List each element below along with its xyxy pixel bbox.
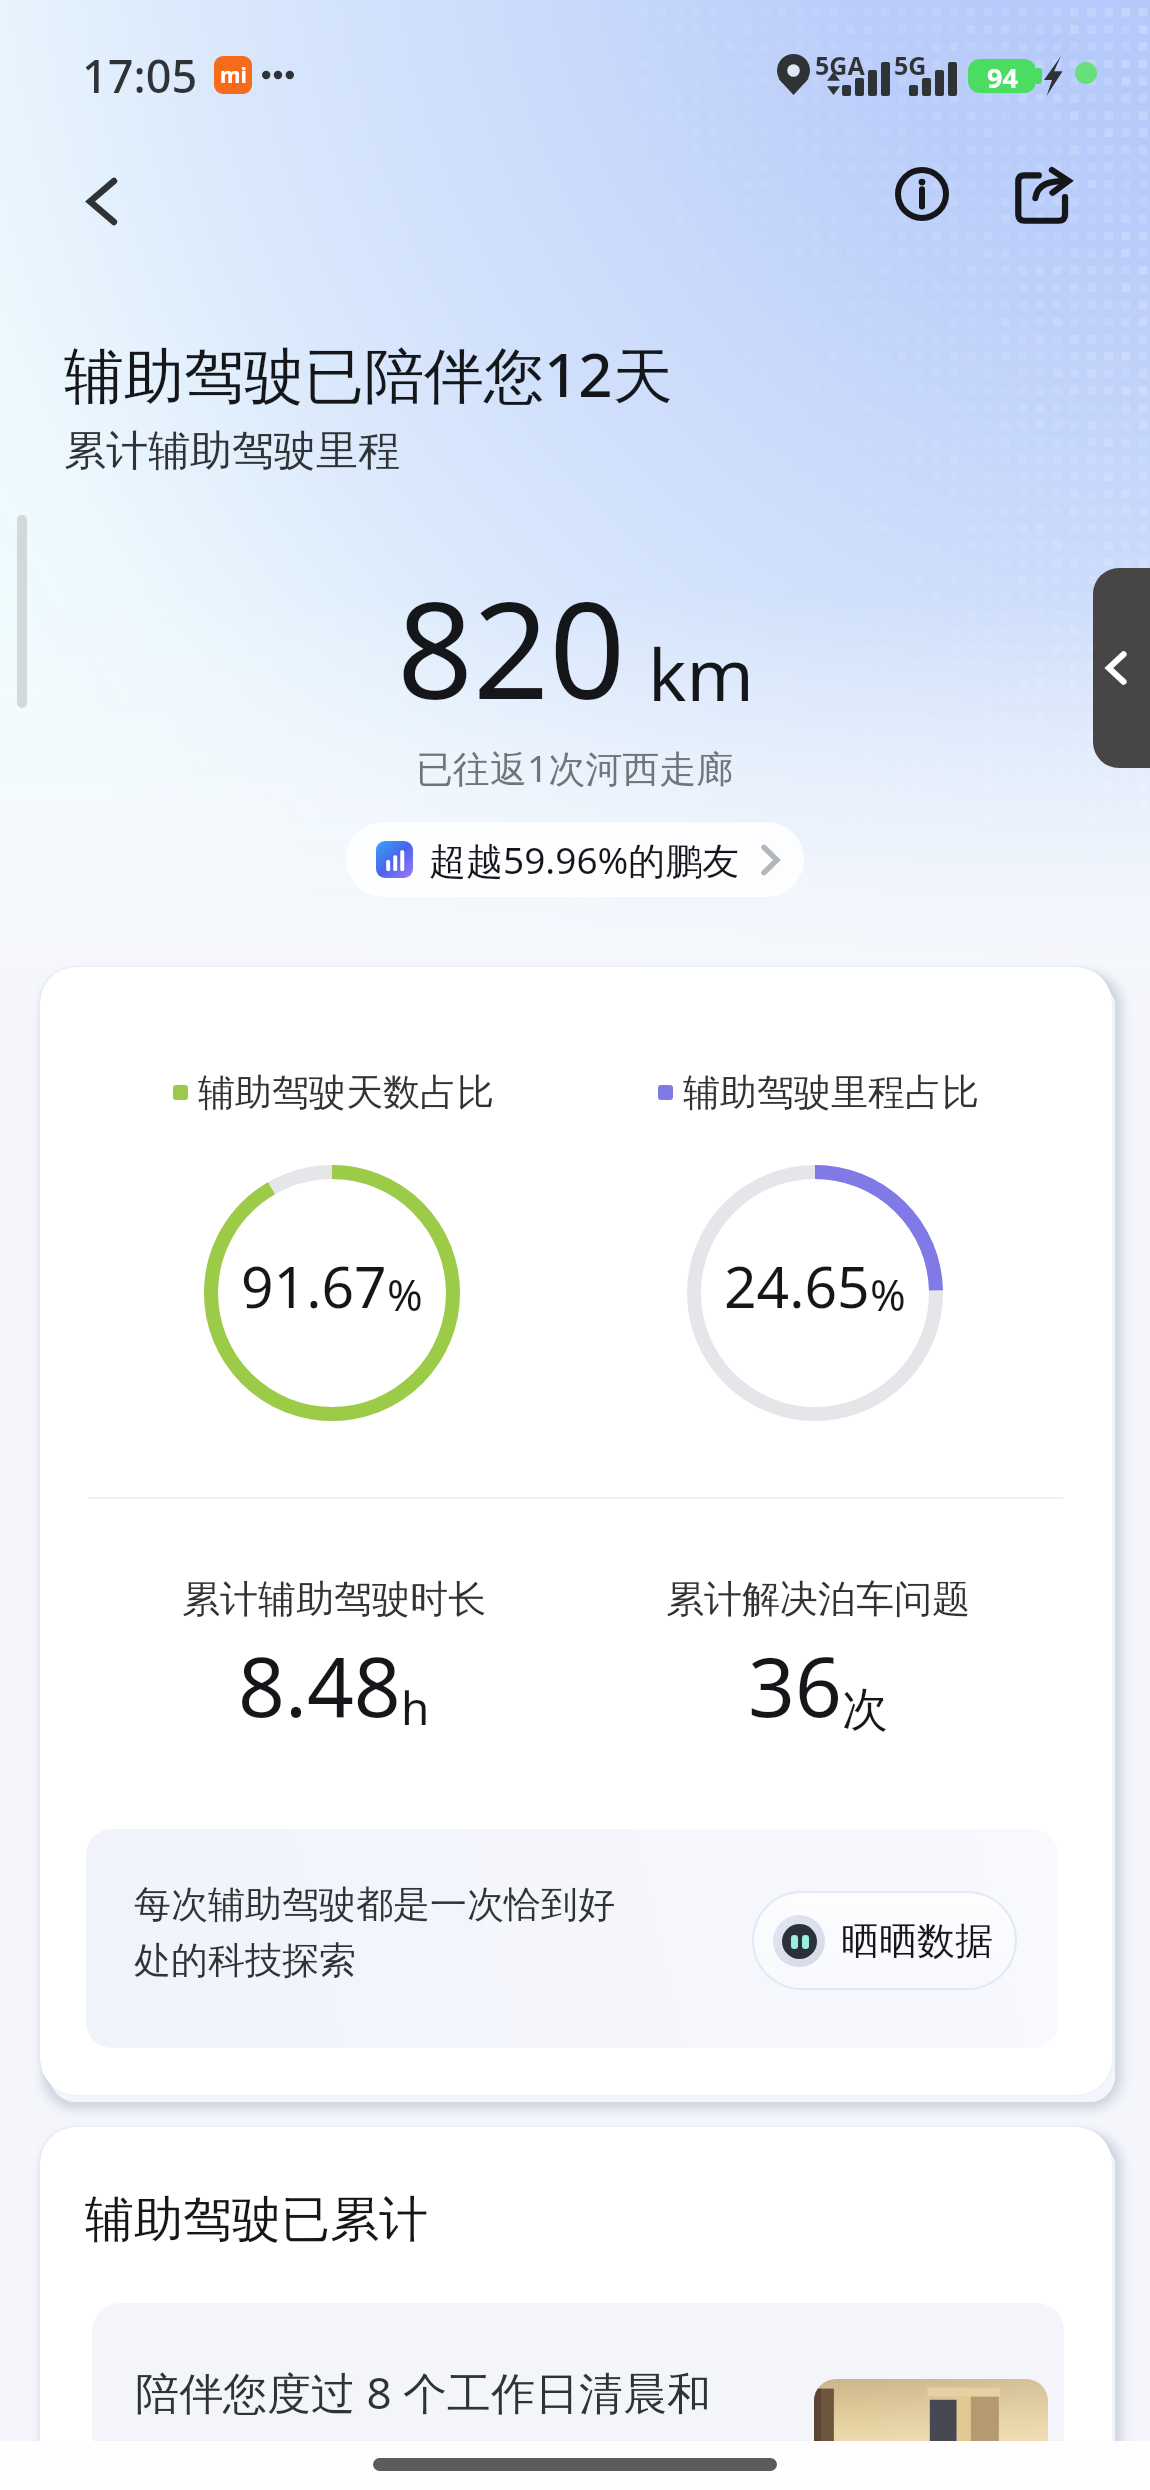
staticText: 辅助驾驶已陪伴您12天 [64, 333, 673, 415]
staticText: mi [220, 61, 247, 90]
staticText: 94 [987, 59, 1018, 93]
staticText: h [401, 1676, 430, 1739]
staticText: 8.48 [238, 1629, 401, 1741]
staticText: 累计辅助驾驶里程 [64, 425, 400, 478]
staticText: 5GA [815, 48, 865, 82]
staticText: 5G [894, 48, 927, 82]
staticText: 次 [842, 1681, 888, 1739]
staticText: 36 [748, 1629, 842, 1741]
staticText: 累计解决泊车问题 [666, 1575, 970, 1623]
button[interactable]: Back [64, 163, 140, 239]
staticText: 陪伴您度过 8 个工作日清晨和 [135, 2362, 712, 2422]
staticText: 超越59.96%的鹏友 [429, 834, 740, 885]
button[interactable]: Share [1002, 155, 1086, 239]
button[interactable]: 晒晒数据 [754, 1893, 1015, 1988]
staticText: 辅助驾驶天数占比 [198, 1069, 494, 1116]
staticText: 辅助驾驶已累计 [85, 2189, 428, 2251]
button[interactable]: Info [880, 152, 964, 236]
staticText: 晒晒数据 [841, 1917, 993, 1965]
staticText: 820 [397, 557, 626, 738]
staticText: 每次辅助驾驶都是一次恰到好 处的科技探索 [134, 1881, 615, 1984]
button[interactable]: Open side panel [1093, 568, 1150, 768]
staticText: 累计辅助驾驶时长 [182, 1575, 486, 1623]
staticText: % [870, 1265, 906, 1324]
staticText: 已往返1次河西走廊 [416, 742, 734, 793]
staticText: 辅助驾驶里程占比 [683, 1069, 979, 1116]
staticText: 91.67 [241, 1247, 387, 1325]
staticText: 17:05 [82, 45, 198, 106]
staticText: km [648, 624, 754, 722]
staticText: 24.65 [724, 1247, 870, 1325]
staticText: % [387, 1265, 423, 1324]
button[interactable]: 超越59.96%的鹏友 [346, 822, 804, 897]
